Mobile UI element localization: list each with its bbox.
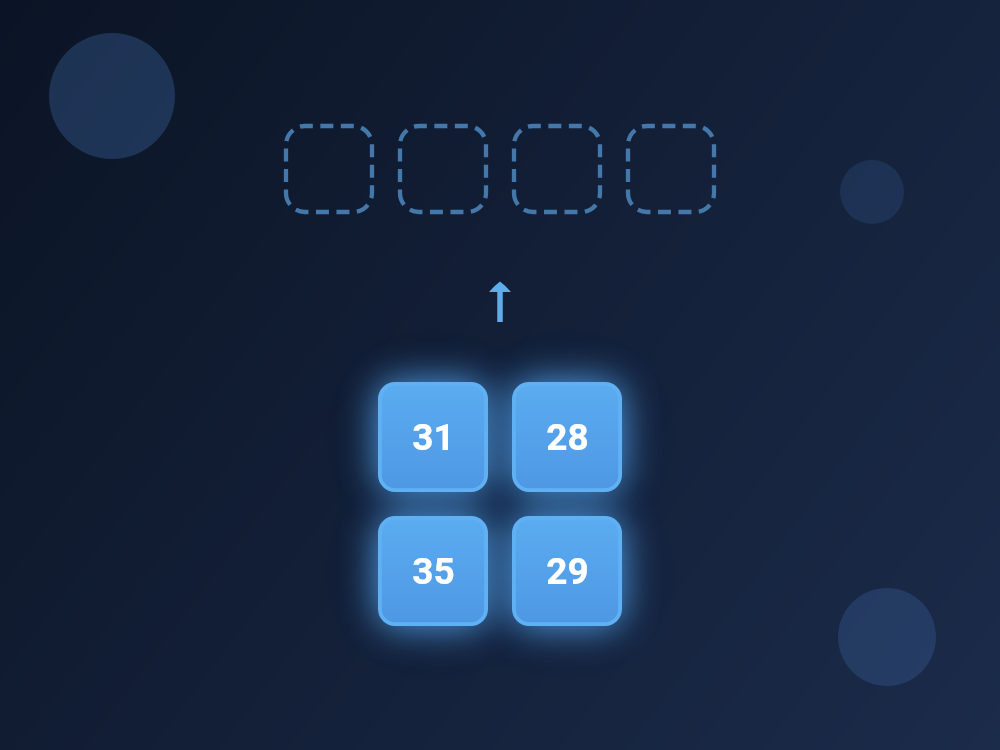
staticText: 31 [412,416,455,459]
button[interactable]: 29 [512,516,622,626]
staticText: 35 [412,550,455,593]
button[interactable]: Empty answer slot 2 [398,124,488,214]
button[interactable]: Empty answer slot 1 [284,124,374,214]
button[interactable]: Empty answer slot 3 [512,124,602,214]
staticText: 28 [546,416,589,459]
button[interactable]: Empty answer slot 4 [626,124,716,214]
staticText: 29 [546,550,589,593]
button[interactable]: 35 [378,516,488,626]
button[interactable]: 31 [378,382,488,492]
button[interactable]: 28 [512,382,622,492]
